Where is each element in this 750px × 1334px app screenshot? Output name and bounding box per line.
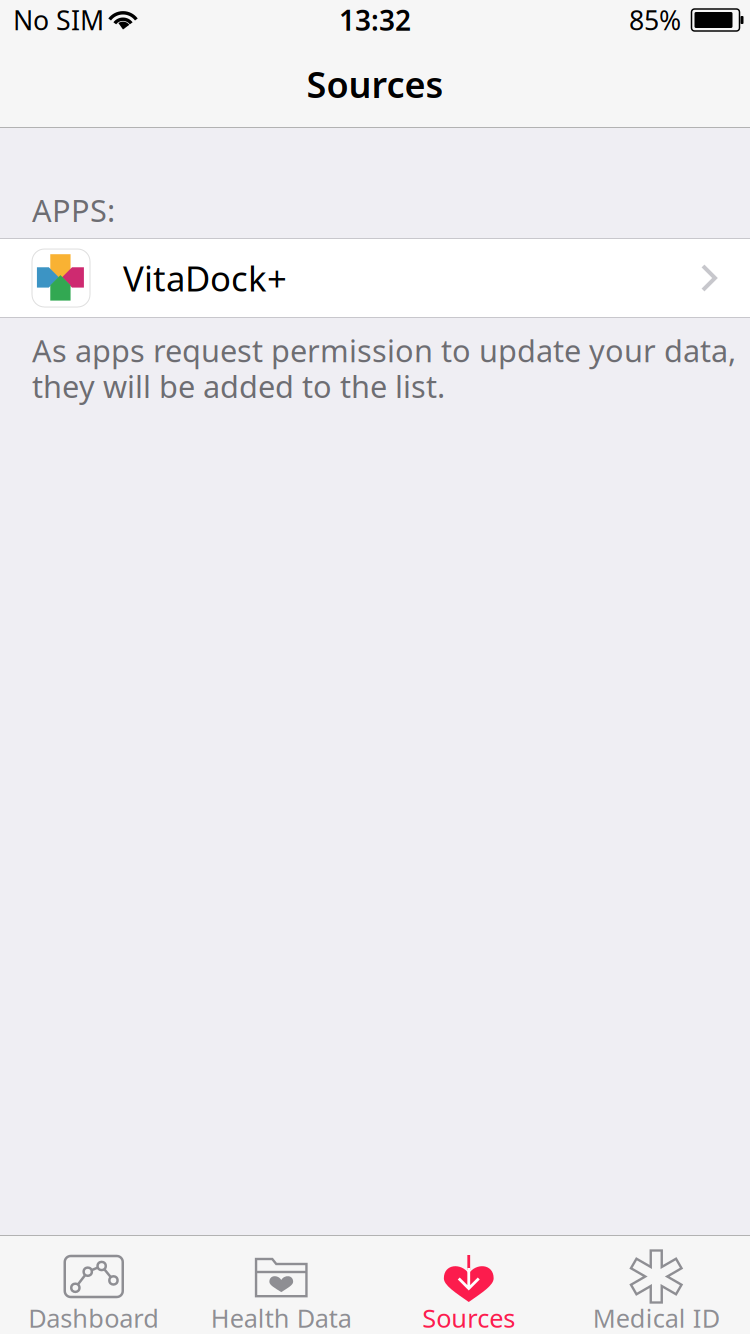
staticText: APPS: <box>32 190 115 230</box>
staticText: As apps request permission to update you… <box>32 330 736 406</box>
staticText: Health Data <box>211 1301 352 1334</box>
staticText: Sources <box>306 60 443 108</box>
button[interactable]: Health Data <box>187 1235 375 1334</box>
staticText: VitaDock+ <box>123 255 287 301</box>
staticText: 13:32 <box>339 1 411 39</box>
button[interactable]: Dashboard <box>0 1235 187 1334</box>
staticText: 85% <box>629 2 681 38</box>
staticText: Medical ID <box>593 1301 720 1334</box>
staticText: Dashboard <box>28 1301 159 1334</box>
staticText: No SIM <box>13 2 104 38</box>
button[interactable]: VitaDock+ <box>0 238 750 318</box>
staticText: Sources <box>422 1301 515 1334</box>
button[interactable]: Sources <box>375 1235 562 1334</box>
button[interactable]: Medical ID <box>562 1235 750 1334</box>
